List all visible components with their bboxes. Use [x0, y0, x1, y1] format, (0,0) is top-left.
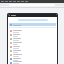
button[interactable] — [5, 1, 8, 2]
button[interactable] — [8, 53, 57, 57]
button[interactable] — [8, 29, 57, 33]
button[interactable] — [9, 1, 12, 2]
button[interactable] — [9, 23, 56, 26]
button[interactable] — [8, 33, 57, 37]
button[interactable] — [25, 1, 28, 2]
button[interactable] — [1, 1, 4, 2]
button[interactable]: App bar — [8, 14, 57, 17]
button[interactable] — [8, 45, 57, 49]
button[interactable] — [21, 1, 24, 2]
button[interactable] — [8, 49, 57, 53]
button[interactable] — [17, 1, 20, 2]
button[interactable] — [13, 1, 16, 2]
button[interactable] — [8, 37, 57, 41]
button[interactable] — [8, 57, 57, 61]
button[interactable] — [8, 61, 57, 64]
button[interactable] — [8, 41, 57, 45]
